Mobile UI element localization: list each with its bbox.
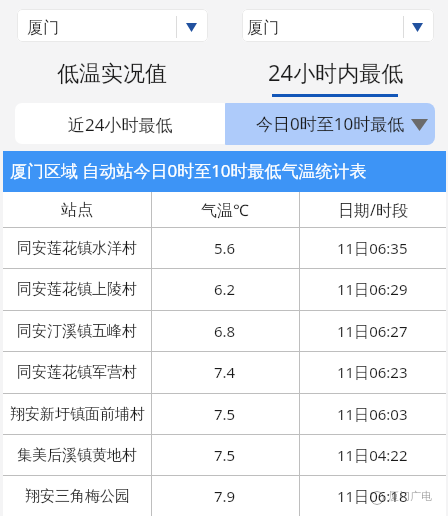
button[interactable]: 今日0时至10时最低 <box>225 103 435 145</box>
button[interactable]: 厦门 <box>242 9 434 42</box>
staticText: 11日06:18 <box>337 486 408 506</box>
staticText: 11日06:35 <box>337 238 408 258</box>
staticText: 站点 <box>61 200 93 220</box>
staticText: 今日0时至10时最低 <box>256 112 405 135</box>
staticText: 5.6 <box>214 238 236 258</box>
staticText: 同安莲花镇军营村 <box>17 363 137 382</box>
button[interactable]: 同安莲花镇水洋村 <box>3 227 446 269</box>
staticText: 近24小时最低 <box>68 113 173 136</box>
staticText: 11日06:27 <box>337 321 408 341</box>
staticText: 6.2 <box>214 279 236 299</box>
staticText: 24小时内最低 <box>268 57 404 87</box>
button[interactable]: 同安莲花镇军营村 <box>3 351 446 393</box>
staticText: 低温实况值 <box>57 60 167 88</box>
staticText: 7.5 <box>214 404 236 424</box>
staticText: 6.8 <box>214 321 236 341</box>
staticText: 厦门广电 <box>388 489 432 503</box>
staticText: 厦门 <box>247 18 279 38</box>
staticText: 11日06:23 <box>337 362 408 382</box>
staticText: 翔安新圩镇面前埔村 <box>10 405 145 424</box>
staticText: 7.4 <box>214 362 236 382</box>
staticText: 同安莲花镇水洋村 <box>17 239 137 258</box>
staticText: 厦门区域 自动站今日0时至10时最低气温统计表 <box>10 159 367 182</box>
staticText: 日期/时段 <box>338 199 408 221</box>
staticText: 11日06:03 <box>337 404 408 424</box>
button[interactable]: 翔安新圩镇面前埔村 <box>3 393 446 435</box>
staticText: 翔安三角梅公园 <box>25 487 130 506</box>
button[interactable]: 同安莲花镇上陵村 <box>3 268 446 310</box>
staticText: 7.9 <box>214 486 236 506</box>
button[interactable]: 24小时内最低 <box>224 56 448 98</box>
staticText: 11日06:29 <box>337 279 408 299</box>
button[interactable]: 低温实况值 <box>0 56 224 98</box>
staticText: 集美后溪镇黄地村 <box>17 446 137 465</box>
button[interactable]: 厦门 <box>17 9 208 42</box>
staticText: 气温℃ <box>201 199 249 221</box>
button[interactable]: 近24小时最低 <box>15 103 225 144</box>
button[interactable]: 同安汀溪镇五峰村 <box>3 310 446 352</box>
button[interactable]: 集美后溪镇黄地村 <box>3 434 446 476</box>
button[interactable]: 翔安三角梅公园 <box>3 475 446 516</box>
staticText: 11日04:22 <box>337 445 408 465</box>
staticText: 7.5 <box>214 445 236 465</box>
other: 展开选项 <box>411 119 428 131</box>
staticText: 同安莲花镇上陵村 <box>17 280 137 299</box>
staticText: 厦门 <box>27 18 59 38</box>
staticText: 同安汀溪镇五峰村 <box>17 322 137 341</box>
